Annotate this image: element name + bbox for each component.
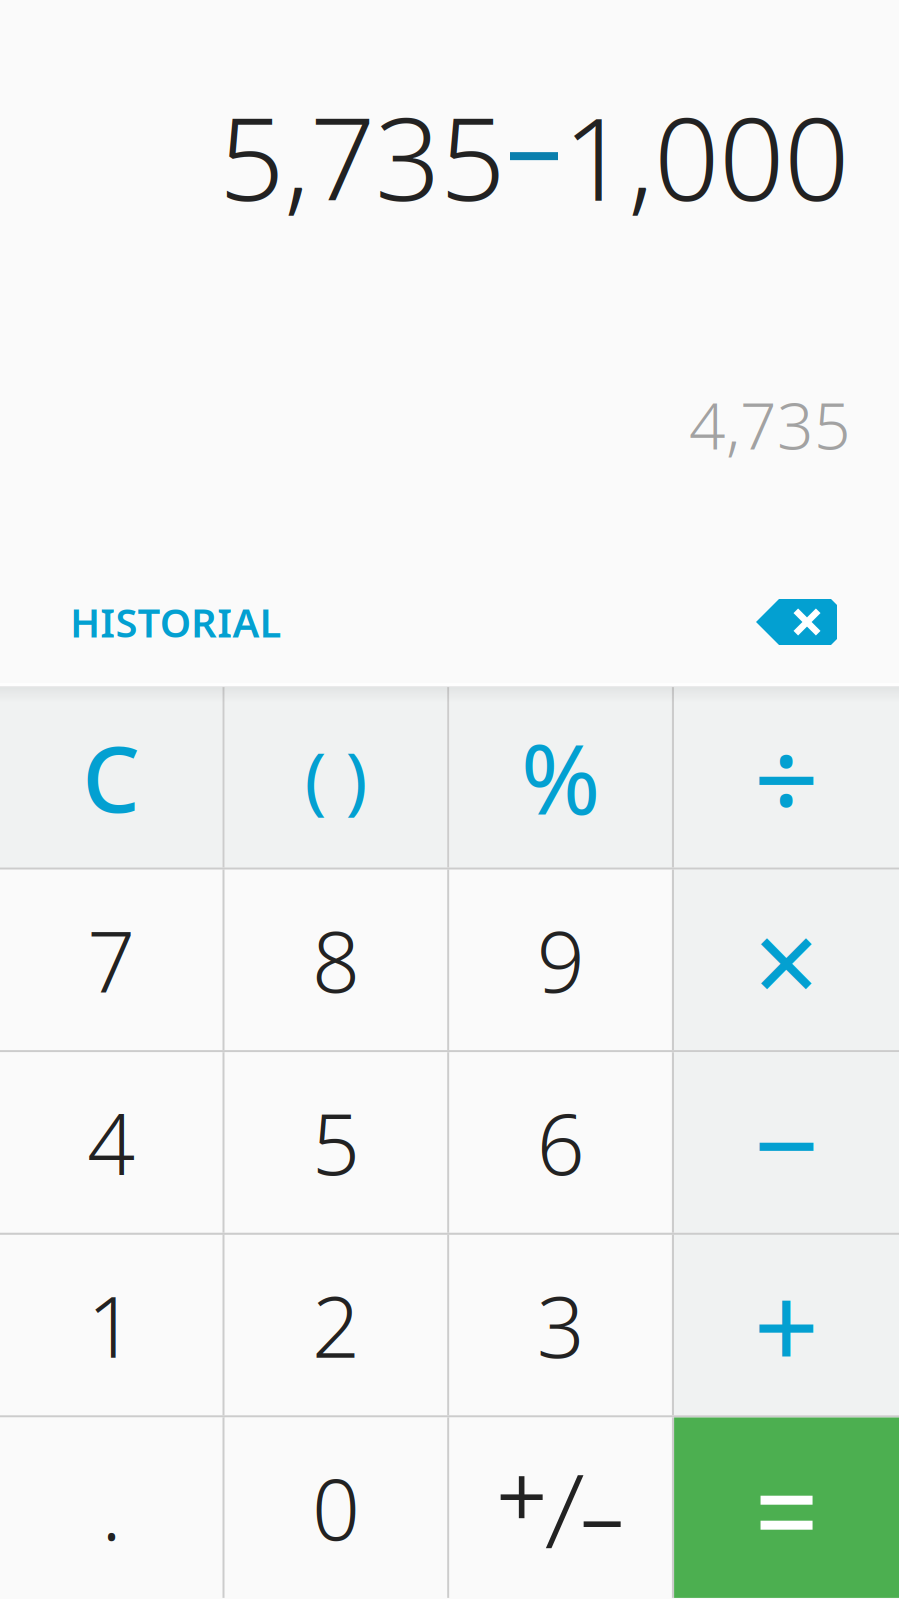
button[interactable]: 9 [449, 870, 672, 1050]
staticText: 2 [312, 1269, 360, 1381]
button[interactable]: ( ) [225, 687, 447, 867]
staticText: + [753, 1249, 819, 1401]
button[interactable]: Equals [674, 1417, 899, 1598]
button[interactable]: × [674, 870, 899, 1050]
button[interactable]: 1 [0, 1235, 222, 1415]
button[interactable]: 6 [449, 1052, 672, 1233]
staticText: 3 [537, 1269, 585, 1381]
staticText: − [753, 1066, 819, 1219]
staticText: 4,735 [689, 382, 851, 467]
staticText: × [753, 884, 819, 1036]
button[interactable]: C [0, 687, 222, 867]
button[interactable]: 0 [225, 1417, 447, 1598]
button[interactable]: 4 [0, 1052, 222, 1233]
button[interactable]: % [449, 687, 672, 867]
staticText: 9 [537, 904, 585, 1016]
staticText: 6 [537, 1087, 585, 1198]
button[interactable]: . [0, 1417, 222, 1598]
staticText: 5,735 [219, 80, 505, 232]
button[interactable]: 3 [449, 1235, 672, 1415]
staticText: 4 [87, 1087, 135, 1198]
button[interactable]: + [674, 1235, 899, 1415]
staticText: ÷ [753, 701, 819, 853]
button[interactable]: HISTORIAL [70, 595, 282, 648]
staticText: . [101, 1452, 121, 1563]
button[interactable]: 2 [225, 1235, 447, 1415]
staticText: 7 [87, 904, 135, 1016]
staticText: % [521, 714, 601, 841]
staticText: 8 [312, 904, 360, 1016]
staticText: 1 [87, 1269, 135, 1381]
button[interactable]: 8 [225, 870, 447, 1050]
button[interactable]: Backspace [756, 599, 837, 645]
button[interactable]: ÷ [674, 687, 899, 867]
staticText: ( ) [304, 729, 367, 826]
staticText: 1,000 [563, 80, 849, 232]
staticText: C [82, 717, 140, 837]
staticText: HISTORIAL [70, 595, 282, 648]
button[interactable]: Toggle sign [449, 1417, 672, 1598]
button[interactable]: 7 [0, 870, 222, 1050]
button[interactable]: 5 [225, 1052, 447, 1233]
button[interactable]: − [674, 1052, 899, 1233]
staticText: 0 [312, 1452, 360, 1563]
staticText: 5 [312, 1087, 360, 1198]
